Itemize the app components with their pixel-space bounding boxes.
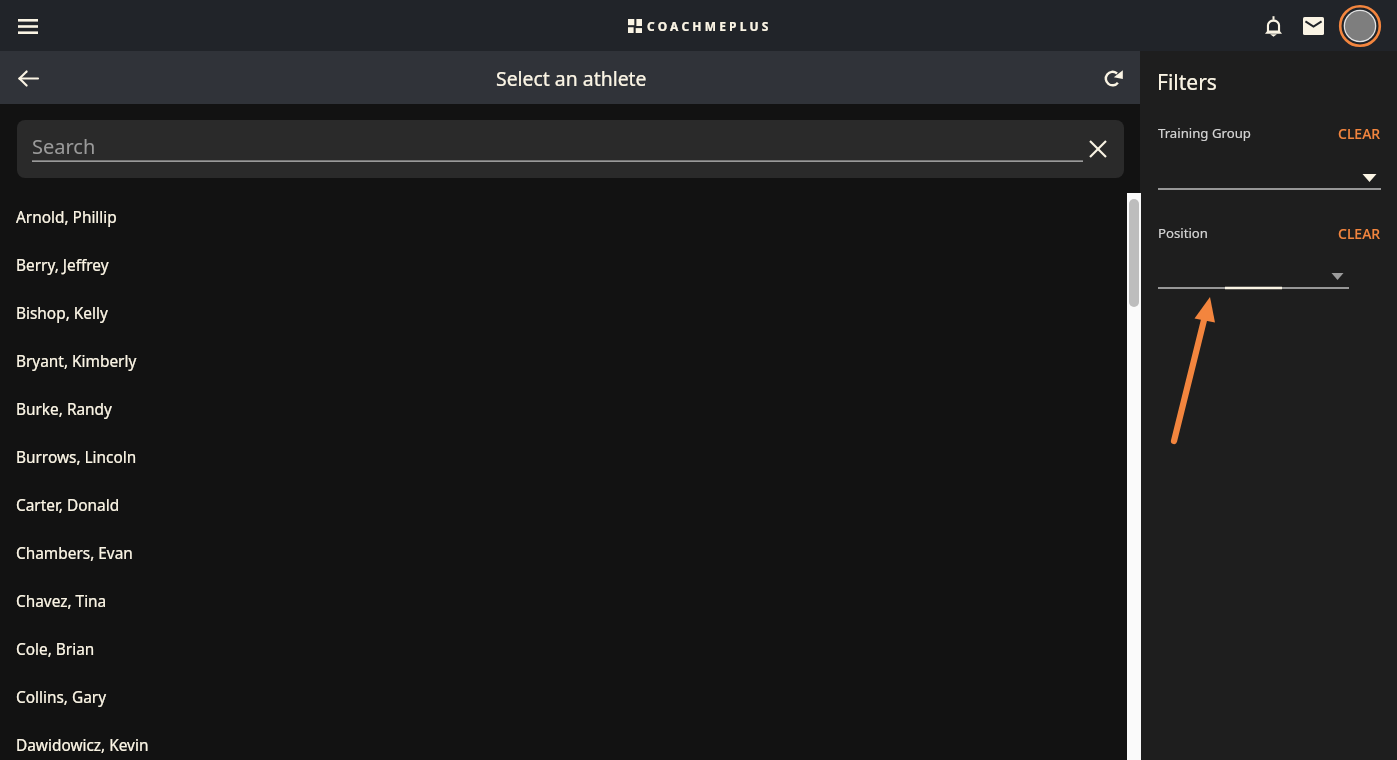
button[interactable]: Bryant, Kimberly [0, 337, 1140, 385]
button[interactable]: Search [17, 120, 1124, 178]
button[interactable]: CLEAR [1338, 223, 1381, 243]
button[interactable]: Carter, Donald [0, 481, 1140, 529]
staticText: Select an athlete [496, 65, 647, 91]
button[interactable]: Chavez, Tina [0, 577, 1140, 625]
button[interactable]: Training Group dropdown [1158, 152, 1381, 190]
button[interactable]: Dawidowicz, Kevin [0, 721, 1140, 760]
staticText: Filters [1157, 68, 1217, 97]
staticText: Burrows, Lincoln [16, 447, 137, 468]
button[interactable]: Arnold, Phillip [0, 193, 1140, 241]
staticText: Carter, Donald [16, 495, 120, 516]
staticText: Burke, Randy [16, 399, 112, 420]
staticText: Cole, Brian [16, 639, 95, 660]
button[interactable]: Refresh [1096, 60, 1132, 96]
staticText: Bishop, Kelly [16, 303, 108, 324]
staticText: CLEAR [1338, 224, 1381, 243]
button[interactable]: Back [10, 60, 46, 96]
staticText: Training Group [1158, 124, 1251, 142]
staticText: Collins, Gary [16, 687, 107, 708]
staticText: CLEAR [1338, 124, 1381, 143]
staticText: Chambers, Evan [16, 543, 133, 564]
button[interactable]: CLEAR [1338, 123, 1381, 143]
button[interactable]: Burke, Randy [0, 385, 1140, 433]
button[interactable]: Position dropdown [1158, 252, 1349, 290]
button[interactable]: Messages [1294, 7, 1332, 45]
button[interactable]: Bishop, Kelly [0, 289, 1140, 337]
button[interactable]: Burrows, Lincoln [0, 433, 1140, 481]
button[interactable]: Menu [10, 8, 46, 44]
button[interactable]: Profile [1338, 4, 1382, 48]
button[interactable]: Notifications [1254, 7, 1292, 45]
button[interactable]: Berry, Jeffrey [0, 241, 1140, 289]
button[interactable]: COACHMEPLUS [628, 18, 772, 34]
button[interactable]: Chambers, Evan [0, 529, 1140, 577]
staticText: Dawidowicz, Kevin [16, 735, 149, 756]
staticText: Berry, Jeffrey [16, 255, 109, 276]
staticText: COACHMEPLUS [647, 18, 772, 34]
staticText: Bryant, Kimberly [16, 351, 137, 372]
staticText: Arnold, Phillip [16, 207, 117, 228]
button[interactable]: Clear search [1082, 133, 1114, 165]
button[interactable]: Cole, Brian [0, 625, 1140, 673]
staticText: Search [32, 133, 96, 160]
staticText: Position [1158, 224, 1208, 242]
button[interactable]: Collins, Gary [0, 673, 1140, 721]
staticText: Chavez, Tina [16, 591, 107, 612]
